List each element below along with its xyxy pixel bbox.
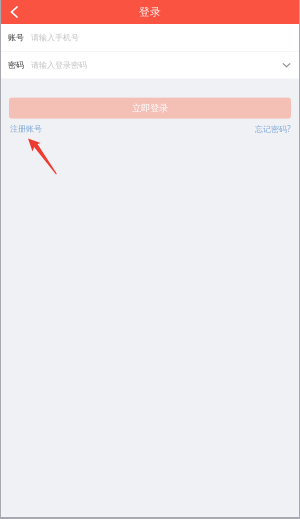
staticText: 请输入登录密码 — [31, 60, 87, 70]
staticText: 请输入手机号 — [31, 33, 79, 42]
button[interactable]: 忘记密码? — [255, 124, 290, 134]
button[interactable]: 注册账号 — [10, 124, 42, 134]
staticText: 忘记密码? — [255, 124, 290, 134]
staticText: 立即登录 — [132, 102, 168, 114]
staticText: 密码 — [8, 60, 24, 70]
button[interactable]: 立即登录 — [9, 98, 291, 119]
staticText: 登录 — [139, 5, 161, 18]
staticText: 注册账号 — [10, 124, 42, 134]
staticText: 账号 — [8, 33, 24, 42]
button[interactable]: Back — [0, 0, 29, 24]
